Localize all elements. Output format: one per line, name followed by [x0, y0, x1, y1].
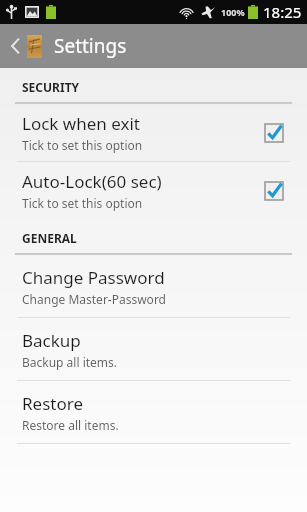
staticText: Auto-Lock(60 sec) — [22, 170, 162, 193]
staticText: Settings — [54, 33, 127, 59]
staticText: Backup — [22, 329, 81, 352]
button[interactable]: Backup — [0, 318, 307, 380]
button[interactable]: Restore — [0, 381, 307, 443]
staticText: Restore — [22, 392, 83, 415]
staticText: Lock when exit — [22, 112, 140, 135]
staticText: Change Master-Password — [22, 291, 166, 307]
button[interactable]: Auto-Lock(60 sec) — [0, 162, 307, 219]
other: Back — [7, 33, 23, 59]
staticText: Backup all items. — [22, 354, 118, 370]
staticText: 100% — [221, 6, 245, 18]
staticText: SECURITY — [22, 79, 80, 95]
staticText: Restore all items. — [22, 417, 119, 433]
staticText: Tick to set this option — [22, 195, 143, 211]
button[interactable]: Toggle option — [259, 176, 289, 206]
staticText: GENERAL — [22, 230, 77, 246]
button[interactable]: Lock when exit — [0, 104, 307, 161]
staticText: 18:25 — [263, 2, 302, 22]
staticText: Tick to set this option — [22, 137, 143, 153]
staticText: Change Password — [22, 266, 165, 289]
button[interactable]: Toggle option — [259, 118, 289, 148]
button[interactable]: Change Password — [0, 255, 307, 317]
button[interactable]: Back — [0, 24, 307, 68]
